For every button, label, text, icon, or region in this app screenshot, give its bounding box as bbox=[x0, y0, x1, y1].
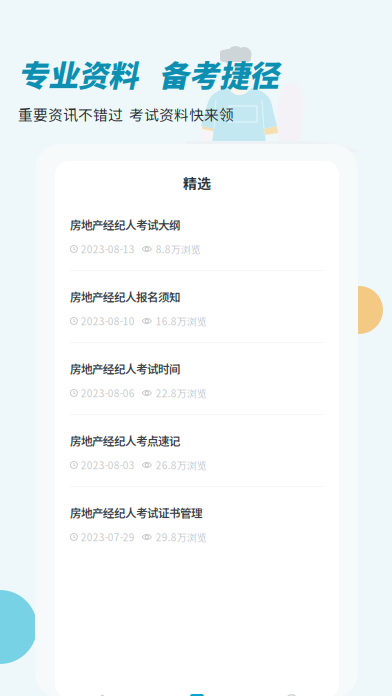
staticText: 精选 bbox=[183, 173, 211, 193]
button[interactable]: 房地产经纪人考试大纲 bbox=[55, 199, 339, 271]
staticText: 重要资讯不错过 考试资料快来领 bbox=[18, 103, 234, 125]
button[interactable]: 房地产经纪人考试时间 bbox=[55, 343, 339, 415]
staticText: 房地产经纪人考点速记 bbox=[70, 432, 180, 449]
button[interactable]: 首页 bbox=[55, 692, 150, 696]
staticText: 房地产经纪人考试证书管理 bbox=[70, 504, 202, 521]
staticText: 8.8万浏览 bbox=[156, 242, 201, 256]
staticText: 2023-08-06 bbox=[81, 386, 135, 400]
button[interactable]: 房地产经纪人考点速记 bbox=[55, 415, 339, 487]
staticText: 专业资料 备考捷径 bbox=[18, 52, 279, 95]
button[interactable]: 房地产经纪人考试证书管理 bbox=[55, 487, 339, 559]
button[interactable]: 资料 bbox=[150, 692, 244, 696]
button[interactable]: 房地产经纪人报名须知 bbox=[55, 271, 339, 343]
staticText: 房地产经纪人考试大纲 bbox=[70, 216, 180, 233]
staticText: 2023-08-13 bbox=[81, 242, 135, 256]
staticText: 22.8万浏览 bbox=[156, 386, 207, 400]
staticText: 房地产经纪人考试时间 bbox=[70, 360, 180, 377]
staticText: 26.8万浏览 bbox=[156, 458, 207, 472]
staticText: 29.8万浏览 bbox=[156, 530, 207, 544]
button[interactable]: 我的 bbox=[244, 692, 339, 696]
staticText: 2023-07-29 bbox=[81, 530, 135, 544]
staticText: 2023-08-03 bbox=[81, 458, 135, 472]
staticText: 2023-08-10 bbox=[81, 314, 135, 328]
staticText: 16.8万浏览 bbox=[156, 314, 207, 328]
staticText: 房地产经纪人报名须知 bbox=[70, 288, 180, 305]
